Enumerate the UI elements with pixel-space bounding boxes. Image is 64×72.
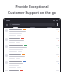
staticText: Provide Exceptional: [15, 4, 49, 9]
button[interactable]: [4, 44, 60, 53]
button[interactable]: More options: [56, 23, 59, 26]
button[interactable]: [4, 60, 60, 69]
button[interactable]: [4, 53, 60, 60]
button[interactable]: [41, 26, 58, 28]
button[interactable]: [4, 37, 60, 44]
button[interactable]: [9, 23, 55, 26]
button[interactable]: [4, 69, 60, 72]
button[interactable]: [6, 26, 24, 28]
button[interactable]: Menu: [5, 23, 8, 26]
button[interactable]: [4, 28, 60, 37]
button[interactable]: [24, 26, 41, 28]
staticText: Customer Support on the go: [8, 10, 56, 15]
